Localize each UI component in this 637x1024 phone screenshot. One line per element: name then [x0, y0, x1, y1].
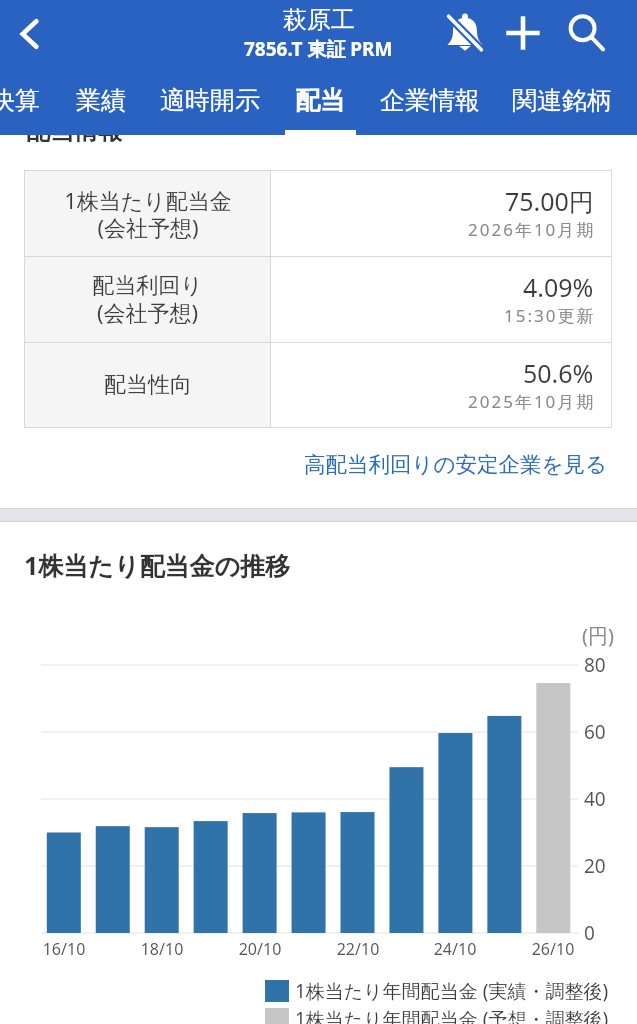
button[interactable]: 配当 — [276, 68, 364, 135]
staticText: 75.00円 — [505, 184, 594, 218]
staticText: (円) — [582, 622, 614, 649]
staticText: 企業情報 — [380, 85, 480, 116]
staticText: 配当情報 — [26, 116, 122, 146]
staticText: 決算 — [0, 85, 40, 116]
button[interactable]: 決算 — [0, 68, 58, 135]
staticText: 配当 — [295, 85, 345, 116]
staticText: 関連銘柄 — [512, 85, 612, 116]
staticText: 60 — [584, 719, 606, 745]
button[interactable]: 関連銘柄 — [495, 68, 628, 135]
button[interactable]: Back — [1, 5, 59, 63]
staticText: 配当性向 — [104, 371, 192, 399]
staticText: 配当利回り (会社予想) — [92, 272, 203, 328]
staticText: 20/10 — [228, 938, 292, 960]
staticText: 1株当たり年間配当金 (予想・調整後) — [295, 1006, 609, 1024]
staticText: 業績 — [76, 85, 126, 116]
staticText: 1株当たり配当金 (会社予想) — [64, 185, 232, 243]
staticText: 4.09% — [523, 270, 594, 304]
staticText: 高配当利回りの安定企業を見る — [304, 451, 608, 478]
staticText: 22/10 — [326, 938, 390, 960]
button[interactable]: 高配当利回りの安定企業を見る — [296, 445, 616, 484]
staticText: 1株当たり年間配当金 (実績・調整後) — [295, 978, 609, 1004]
staticText: 16/10 — [32, 938, 96, 960]
staticText: 40 — [584, 786, 606, 812]
staticText: 24/10 — [423, 938, 487, 960]
staticText: 2025年10月期 — [468, 390, 596, 413]
staticText: 20 — [584, 853, 606, 879]
staticText: 萩原工 — [283, 5, 355, 35]
staticText: 80 — [584, 652, 606, 678]
button[interactable]: Search — [557, 4, 615, 62]
staticText: 2026年10月期 — [468, 218, 596, 241]
staticText: 1株当たり配当金の推移 — [24, 548, 291, 582]
button[interactable]: 適時開示 — [144, 68, 276, 135]
button[interactable]: Add — [494, 4, 552, 62]
staticText: 18/10 — [130, 938, 194, 960]
button[interactable]: Notifications off — [436, 4, 494, 62]
staticText: 適時開示 — [160, 85, 260, 116]
button[interactable]: 企業情報 — [364, 68, 495, 135]
staticText: 50.6% — [523, 356, 594, 390]
staticText: 7856.T 東証 PRM — [244, 36, 393, 62]
staticText: 26/10 — [521, 938, 585, 960]
button[interactable]: 業績 — [58, 68, 144, 135]
staticText: 15:30更新 — [504, 304, 596, 327]
staticText: 0 — [584, 920, 595, 946]
